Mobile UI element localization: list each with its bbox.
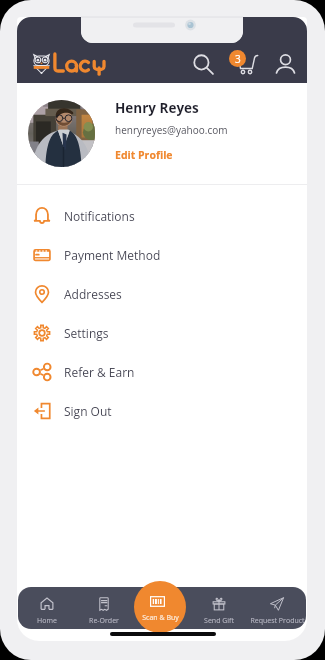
button[interactable]: Home <box>18 587 75 629</box>
staticText: 3 <box>235 52 241 66</box>
button[interactable]: Addresses <box>17 274 307 313</box>
staticText: Request Product <box>250 616 305 626</box>
button[interactable]: Edit Profile <box>115 148 173 162</box>
button[interactable]: Send Gift <box>190 587 248 629</box>
button[interactable]: Payment Method <box>17 235 307 274</box>
button[interactable]: Account <box>272 50 299 77</box>
staticText: Henry Reyes <box>115 99 199 117</box>
staticText: Notifications <box>64 208 135 224</box>
staticText: Refer & Earn <box>64 364 135 380</box>
staticText: Home <box>37 616 57 626</box>
staticText: henryreyes@yahoo.com <box>115 123 228 137</box>
button[interactable]: Cart, 3 items <box>230 46 262 78</box>
staticText: Edit Profile <box>115 148 173 162</box>
button[interactable]: Re-Order <box>75 587 132 629</box>
staticText: Scan & Buy <box>142 613 179 623</box>
button[interactable]: Sign Out <box>17 391 307 430</box>
button[interactable]: Search <box>189 50 218 79</box>
button[interactable]: Settings <box>17 313 307 352</box>
staticText: Re-Order <box>89 616 119 626</box>
staticText: Sign Out <box>64 403 112 419</box>
button[interactable]: Request Product <box>248 587 306 629</box>
staticText: Settings <box>64 325 109 341</box>
button[interactable]: Refer & Earn <box>17 352 307 391</box>
staticText: Send Gift <box>204 616 234 626</box>
staticText: Payment Method <box>64 247 161 263</box>
staticText: Addresses <box>64 286 122 302</box>
button[interactable]: Notifications <box>17 196 307 235</box>
button[interactable]: Scan & Buy <box>134 581 186 633</box>
